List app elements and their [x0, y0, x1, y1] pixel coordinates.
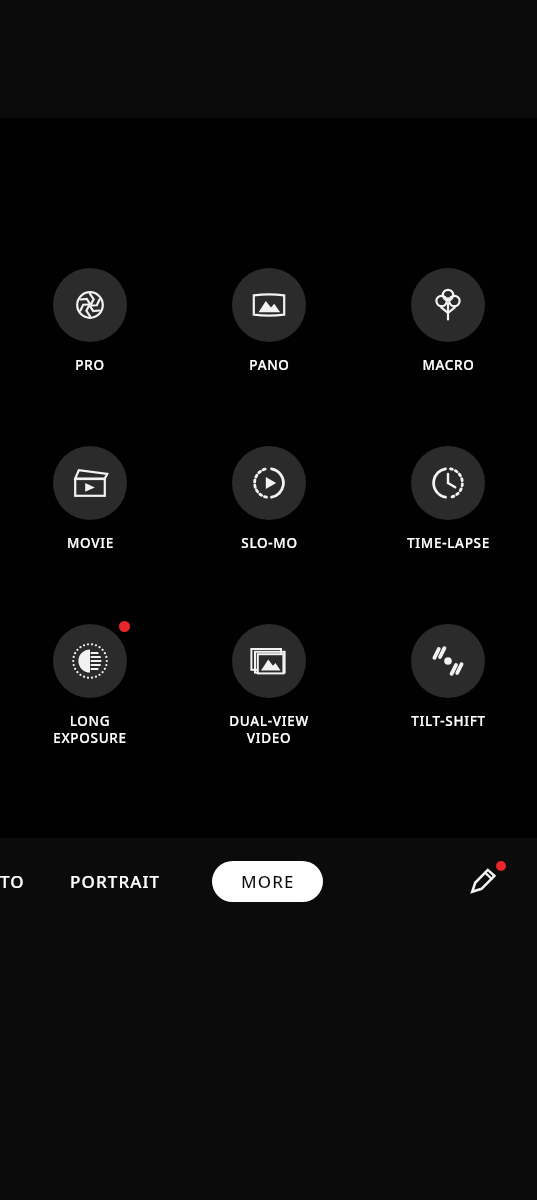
button[interactable]: TO	[0, 860, 35, 903]
staticText: PRO	[75, 356, 105, 374]
button[interactable]: LONG EXPOSURE	[20, 618, 160, 747]
staticText: MORE	[241, 870, 295, 893]
button[interactable]: TIME-LAPSE	[378, 440, 518, 552]
staticText: MACRO	[422, 356, 475, 374]
staticText: MOVIE	[67, 534, 114, 552]
staticText: LONG EXPOSURE	[53, 712, 127, 747]
staticText: DUAL-VIEW VIDEO	[229, 712, 309, 747]
button[interactable]: TILT-SHIFT	[378, 618, 518, 730]
button[interactable]: Edit modes	[459, 857, 507, 905]
button[interactable]: PRO	[20, 262, 160, 374]
staticText: SLO-MO	[241, 534, 298, 552]
button[interactable]: MOVIE	[20, 440, 160, 552]
staticText: TO	[0, 870, 25, 893]
button[interactable]: PANO	[199, 262, 339, 374]
button[interactable]: DUAL-VIEW VIDEO	[199, 618, 339, 747]
button[interactable]: MORE	[212, 861, 323, 902]
staticText: TIME-LAPSE	[407, 534, 490, 552]
button[interactable]: PORTRAIT	[62, 860, 169, 903]
button[interactable]: MACRO	[378, 262, 518, 374]
button[interactable]: SLO-MO	[199, 440, 339, 552]
staticText: PANO	[249, 356, 290, 374]
staticText: PORTRAIT	[70, 870, 161, 893]
staticText: TILT-SHIFT	[411, 712, 486, 730]
